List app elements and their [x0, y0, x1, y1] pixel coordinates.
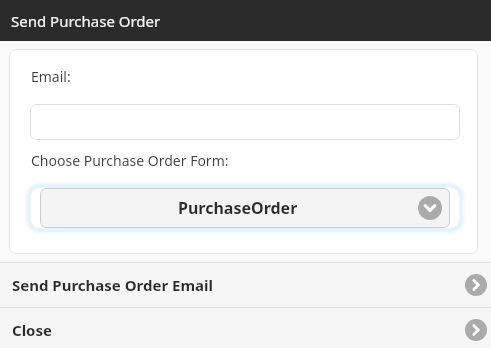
other: Open form chooser	[418, 196, 442, 220]
staticText: PurchaseOrder	[178, 197, 298, 219]
staticText: Choose Purchase Order Form:	[31, 151, 229, 170]
button[interactable]: Send Purchase Order Email	[0, 262, 491, 307]
staticText: Send Purchase Order	[11, 11, 161, 31]
staticText: Send Purchase Order Email	[12, 275, 213, 295]
button[interactable]: Close	[0, 307, 491, 348]
staticText: Close	[12, 320, 52, 340]
staticText: Email:	[31, 67, 71, 86]
button[interactable]: Email input	[30, 104, 460, 140]
button[interactable]: PurchaseOrder	[40, 188, 450, 228]
